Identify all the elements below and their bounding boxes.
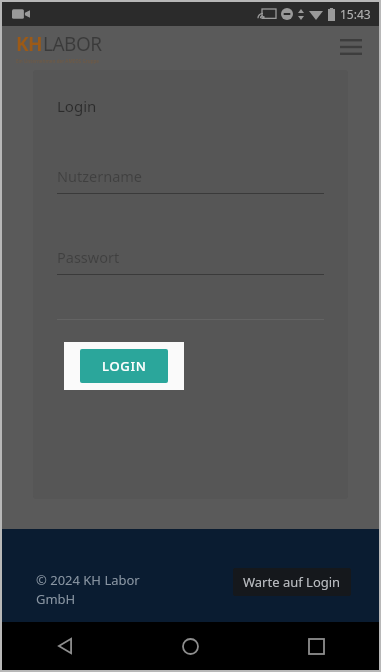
button[interactable]: Menü öffnen <box>331 27 371 67</box>
staticText: Warte auf Login <box>243 573 341 591</box>
button[interactable]: Passwort <box>57 247 324 275</box>
staticText: 15:43 <box>340 6 371 22</box>
staticText: KH <box>16 31 43 57</box>
staticText: LOGIN <box>102 357 147 375</box>
button[interactable]: LOGIN <box>80 349 168 383</box>
staticText: Passwort <box>57 247 120 267</box>
staticText: Login <box>57 96 97 116</box>
staticText: © 2024 KH Labor GmbH <box>36 571 166 608</box>
button[interactable]: Letzte Apps <box>253 622 379 670</box>
button[interactable]: Nutzername <box>57 166 324 194</box>
button[interactable]: Warte auf Login <box>233 568 351 596</box>
button[interactable]: Zurück <box>2 622 127 670</box>
staticText: Ein Unternehmen der AMEOS Gruppe <box>16 58 100 64</box>
staticText: LABOR <box>43 31 102 57</box>
button[interactable]: Startbildschirm <box>127 622 253 670</box>
staticText: Nutzername <box>57 166 143 186</box>
